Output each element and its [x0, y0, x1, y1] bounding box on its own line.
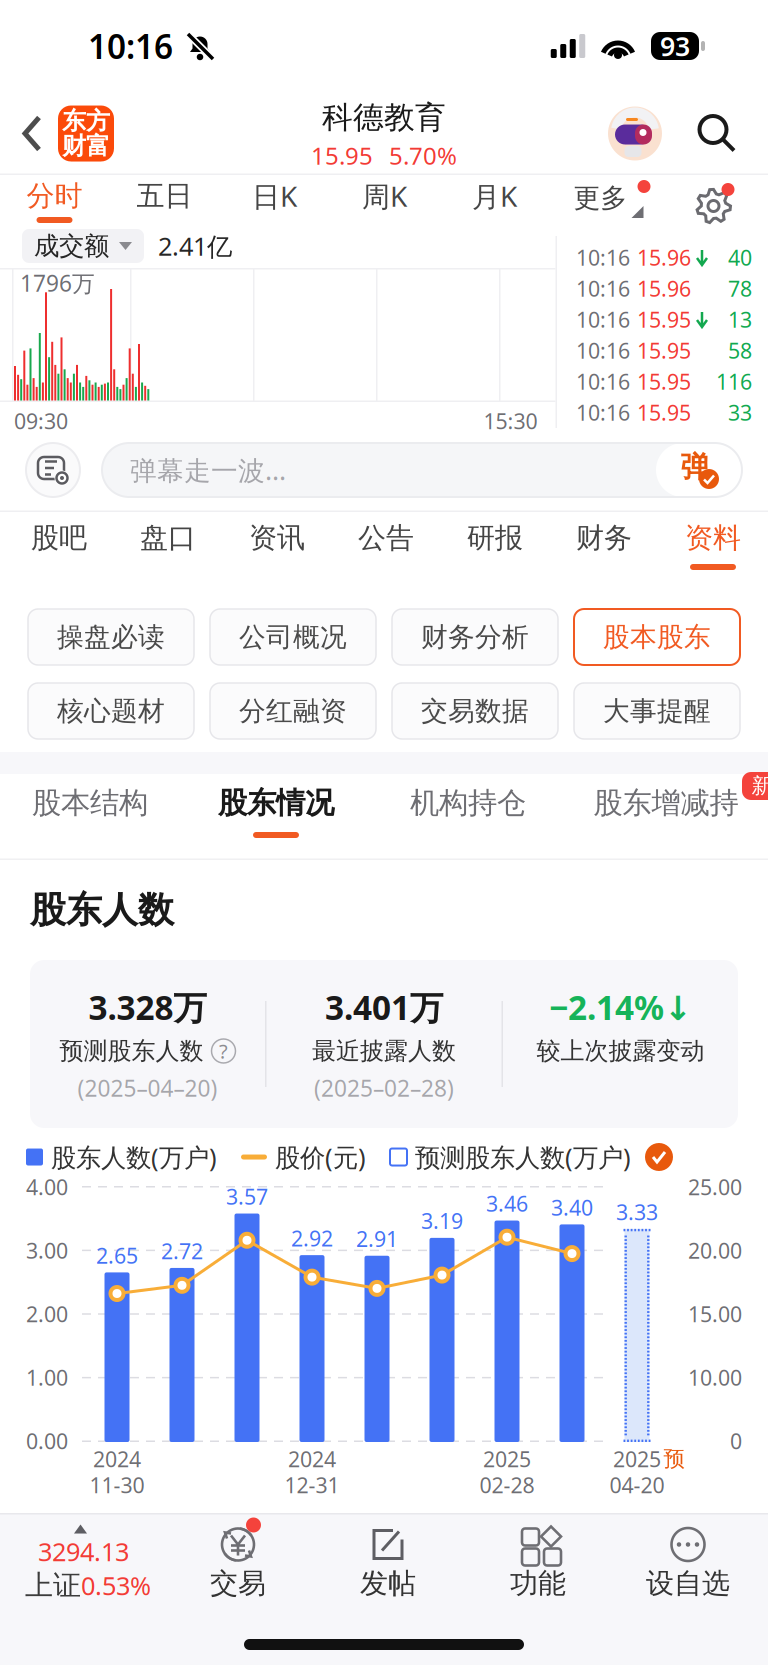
- button[interactable]: 设自选: [613, 1514, 763, 1624]
- button[interactable]: 机构持仓: [372, 774, 564, 860]
- staticText: 股本股东: [603, 621, 711, 653]
- staticText: 2.92: [291, 1224, 333, 1252]
- staticText: 10:16: [576, 336, 630, 365]
- staticText: 科德教育: [322, 99, 446, 136]
- button[interactable]: AI assistant: [606, 104, 684, 162]
- staticText: 预测股东人数(万户): [415, 1140, 631, 1174]
- button[interactable]: 大事提醒: [574, 683, 740, 739]
- staticText: 预: [663, 1446, 684, 1472]
- button[interactable]: 更多: [549, 175, 658, 236]
- button[interactable]: 月K: [439, 175, 549, 236]
- button[interactable]: 财务分析: [392, 609, 558, 665]
- staticText: 弹幕走一波...: [130, 452, 286, 488]
- button[interactable]: 股东情况: [180, 774, 372, 860]
- button[interactable]: 操盘必读: [28, 609, 194, 665]
- staticText: 较上次披露变动: [536, 1036, 704, 1066]
- staticText: 3294.13: [38, 1535, 129, 1568]
- staticText: 10:16: [576, 398, 630, 427]
- staticText: 股东情况: [218, 785, 334, 821]
- staticText: 成交额: [34, 230, 109, 261]
- button[interactable]: Back: [0, 92, 58, 174]
- button[interactable]: 弹幕走一波...: [80, 443, 742, 497]
- button[interactable]: 周K: [329, 175, 439, 236]
- button[interactable]: 公司概况: [210, 609, 376, 665]
- staticText: 78: [728, 274, 752, 303]
- staticText: 1796万: [20, 268, 95, 298]
- button[interactable]: 发帖: [313, 1514, 463, 1624]
- staticText: 功能: [510, 1566, 566, 1601]
- button[interactable]: 盘口: [113, 512, 222, 582]
- button[interactable]: 功能: [463, 1514, 613, 1624]
- button[interactable]: 财务: [549, 512, 658, 582]
- button[interactable]: 股东增减持: [564, 774, 768, 860]
- staticText: (2025–02–28): [314, 1073, 454, 1103]
- staticText: 设自选: [646, 1566, 730, 1601]
- staticText: 最近披露人数: [312, 1036, 456, 1066]
- staticText: 5.70%: [389, 140, 457, 171]
- button[interactable]: 股吧: [4, 512, 113, 582]
- button[interactable]: 3294.13: [0, 1514, 163, 1624]
- button[interactable]: 日K: [219, 175, 329, 236]
- button[interactable]: 股本股东: [574, 609, 740, 665]
- staticText: 交易: [210, 1566, 266, 1601]
- staticText: 15.96: [637, 274, 691, 303]
- button[interactable]: Notes: [26, 443, 80, 497]
- staticText: 20.00: [688, 1236, 742, 1265]
- staticText: 预测股东人数: [59, 1036, 203, 1066]
- staticText: 10:16: [576, 367, 630, 396]
- staticText: 15.95: [637, 367, 691, 396]
- staticText: 4.00: [26, 1173, 68, 1201]
- staticText: 15.96: [637, 243, 691, 272]
- staticText: 股东人数(万户): [51, 1140, 217, 1174]
- staticText: 股吧: [31, 521, 87, 555]
- button[interactable]: 核心题材: [28, 683, 194, 739]
- button[interactable]: 分时: [0, 175, 109, 236]
- staticText: 弹: [680, 449, 709, 485]
- staticText: 10.00: [688, 1363, 742, 1392]
- staticText: 2024: [288, 1445, 336, 1473]
- staticText: 更多: [573, 182, 627, 214]
- button[interactable]: Search: [684, 97, 748, 169]
- staticText: 10:16: [576, 243, 630, 272]
- staticText: 10:16: [88, 24, 173, 68]
- staticText: 交易数据: [421, 695, 529, 727]
- staticText: 分红融资: [239, 695, 347, 727]
- staticText: 3.40: [551, 1193, 593, 1221]
- staticText: 大事提醒: [603, 695, 711, 727]
- staticText: 93: [660, 28, 690, 64]
- button[interactable]: 股本结构: [0, 774, 180, 860]
- staticText: 04-20: [609, 1471, 664, 1499]
- staticText: 2025: [613, 1445, 661, 1473]
- staticText: 核心题材: [57, 695, 165, 727]
- staticText: 股本结构: [32, 785, 148, 821]
- button[interactable]: 资料: [658, 512, 767, 582]
- staticText: 2.41亿: [158, 229, 232, 263]
- button[interactable]: Settings: [658, 175, 768, 236]
- staticText: 10:16: [576, 274, 630, 303]
- staticText: 资料: [685, 521, 741, 555]
- staticText: 2.00: [26, 1300, 68, 1328]
- staticText: 15.95: [311, 140, 373, 171]
- staticText: 财富: [62, 131, 110, 161]
- staticText: 12-31: [284, 1471, 339, 1499]
- staticText: 15.00: [688, 1300, 742, 1328]
- button[interactable]: 五日: [109, 175, 219, 236]
- staticText: 3.33: [616, 1198, 658, 1226]
- button[interactable]: 公告: [331, 512, 440, 582]
- button[interactable]: 资讯: [222, 512, 331, 582]
- button[interactable]: 分红融资: [210, 683, 376, 739]
- staticText: 0.53%: [81, 1569, 151, 1602]
- staticText: 10:16: [576, 305, 630, 334]
- button[interactable]: 交易: [163, 1514, 313, 1624]
- button[interactable]: 东方财富 home: [58, 105, 114, 161]
- staticText: 股价(元): [275, 1140, 366, 1174]
- staticText: 月K: [472, 177, 517, 215]
- button[interactable]: 研报: [440, 512, 549, 582]
- staticText: 公告: [358, 521, 414, 555]
- staticText: 机构持仓: [410, 785, 526, 821]
- button[interactable]: 交易数据: [392, 683, 558, 739]
- staticText: 资讯: [249, 521, 305, 555]
- staticText: ?: [219, 1038, 228, 1064]
- staticText: 上证: [25, 1568, 81, 1603]
- staticText: 2.91: [356, 1225, 398, 1253]
